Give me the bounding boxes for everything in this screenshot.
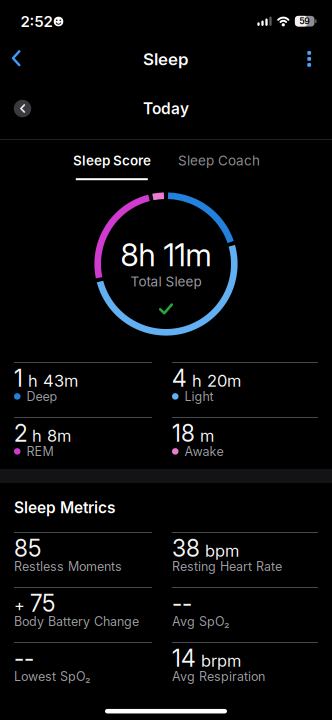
staticText: Avg Respiration: [172, 669, 265, 684]
staticText: 14 brpm: [172, 645, 241, 672]
staticText: 2 h 8m: [14, 420, 71, 447]
staticText: Awake: [184, 444, 223, 459]
staticText: 38 bpm: [172, 535, 239, 562]
staticText: Body Battery Change: [14, 614, 139, 629]
staticText: 1 h 43m: [14, 365, 78, 392]
staticText: Total Sleep: [130, 273, 201, 290]
staticText: 85: [14, 535, 41, 562]
staticText: Sleep: [143, 49, 189, 69]
staticText: Avg SpO₂: [172, 614, 230, 629]
staticText: 4 h 20m: [172, 365, 241, 392]
button[interactable]: Sleep Coach: [164, 140, 274, 180]
staticText: --: [14, 645, 34, 672]
staticText: REM: [26, 444, 53, 459]
staticText: Resting Heart Rate: [172, 559, 282, 574]
staticText: Lowest SpO₂: [14, 669, 91, 684]
staticText: Light: [184, 389, 213, 404]
button[interactable]: [5, 91, 39, 125]
staticText: Sleep Coach: [178, 152, 260, 169]
staticText: Sleep Metrics: [14, 498, 115, 517]
staticText: Deep: [26, 389, 57, 404]
staticText: Restless Moments: [14, 559, 122, 574]
button[interactable]: Sleep Score: [57, 140, 167, 180]
staticText: 8h 11m: [120, 236, 211, 274]
staticText: --: [172, 590, 192, 617]
staticText: Sleep Score: [73, 152, 151, 169]
staticText: 59: [299, 16, 310, 26]
staticText: 18 m: [172, 420, 214, 447]
staticText: Today: [143, 99, 189, 118]
button[interactable]: [0, 36, 32, 80]
button[interactable]: [293, 37, 325, 81]
staticText: 2:52: [20, 12, 52, 30]
staticText: + 75: [14, 590, 55, 617]
